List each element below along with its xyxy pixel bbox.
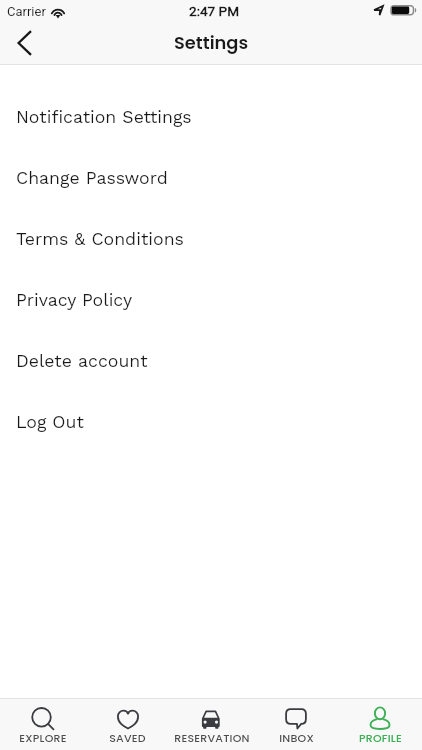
staticText: RESERVATION xyxy=(174,730,250,745)
staticText: Terms & Conditions xyxy=(16,229,184,250)
button[interactable]: EXPLORE xyxy=(0,699,85,750)
button[interactable]: Notification Settings xyxy=(0,87,422,148)
staticText: Change Password xyxy=(16,168,168,189)
staticText: INBOX xyxy=(279,730,314,745)
staticText: SAVED xyxy=(109,730,146,745)
button[interactable]: Back xyxy=(0,22,44,65)
staticText: 2:47 PM xyxy=(189,3,240,19)
button[interactable]: Log Out xyxy=(0,392,422,453)
button[interactable]: Change Password xyxy=(0,148,422,209)
staticText: Privacy Policy xyxy=(16,290,133,311)
button[interactable]: PROFILE xyxy=(338,699,422,750)
button[interactable]: Privacy Policy xyxy=(0,270,422,331)
staticText: Delete account xyxy=(16,351,148,372)
button[interactable]: INBOX xyxy=(254,699,338,750)
staticText: Notification Settings xyxy=(16,107,192,128)
staticText: Settings xyxy=(174,30,249,55)
staticText: Carrier xyxy=(7,4,46,19)
staticText: PROFILE xyxy=(359,730,402,745)
button[interactable]: Delete account xyxy=(0,331,422,392)
staticText: Log Out xyxy=(16,412,84,433)
button[interactable]: Terms & Conditions xyxy=(0,209,422,270)
button[interactable]: RESERVATION xyxy=(170,699,254,750)
button[interactable]: SAVED xyxy=(85,699,170,750)
staticText: EXPLORE xyxy=(19,730,67,745)
